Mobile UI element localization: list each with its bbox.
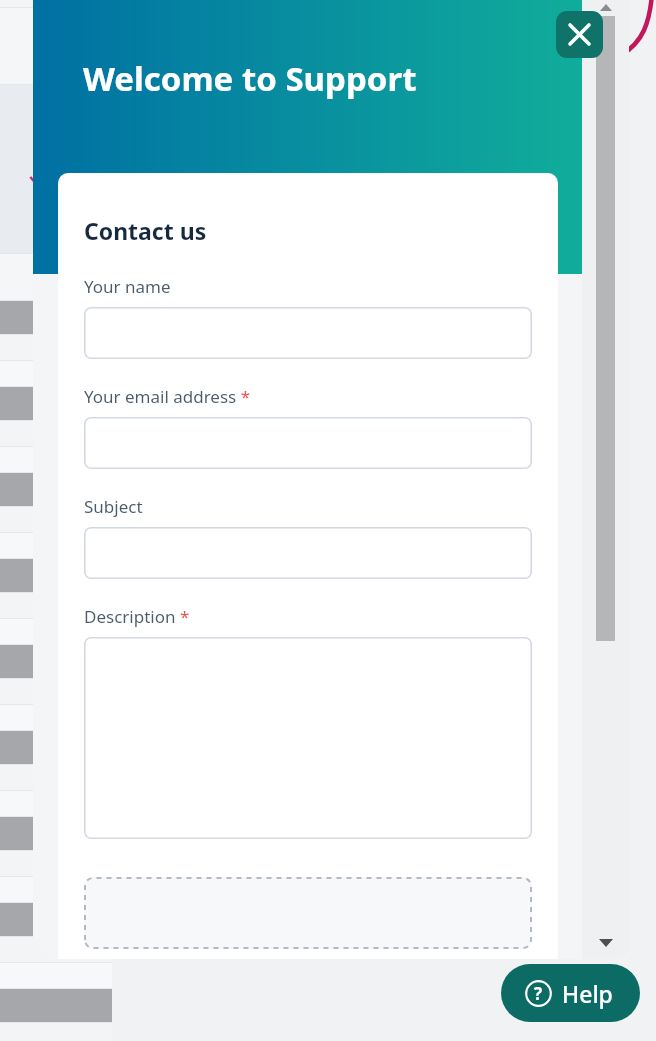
staticText: ? — [534, 982, 543, 1005]
button[interactable] — [84, 527, 532, 579]
staticText: Contact us — [84, 215, 207, 246]
button[interactable]: Add file — [84, 877, 532, 949]
button[interactable]: Close — [556, 11, 603, 58]
staticText: Welcome to Support — [83, 56, 417, 101]
button[interactable]: Scroll up — [594, 0, 618, 14]
button[interactable]: Scroll down — [594, 936, 618, 950]
staticText: Subject — [84, 495, 143, 518]
staticText: Description * — [84, 605, 190, 628]
staticText: Help — [562, 978, 613, 1009]
button[interactable] — [84, 417, 532, 469]
staticText: Your email address * — [84, 385, 251, 408]
button[interactable] — [84, 637, 532, 839]
button[interactable] — [84, 307, 532, 359]
button[interactable]: ? — [501, 964, 640, 1022]
staticText: Your name — [84, 275, 171, 298]
